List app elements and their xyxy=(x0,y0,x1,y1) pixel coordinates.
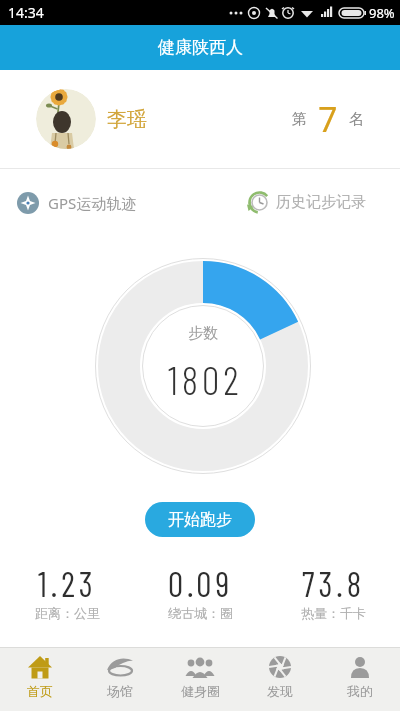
staticText: 健身圈 xyxy=(181,683,220,699)
staticText: 李瑶 xyxy=(107,107,147,132)
staticText: GPS运动轨迹 xyxy=(48,193,137,213)
staticText: 历史记步记录 xyxy=(276,193,366,212)
button[interactable]: GPS运动轨迹 xyxy=(0,169,200,236)
staticText: 1.23 xyxy=(38,563,97,604)
staticText: 发现 xyxy=(267,683,293,699)
button[interactable]: 李瑶 xyxy=(0,70,400,168)
staticText: 首页 xyxy=(27,683,53,699)
staticText: 0.09 xyxy=(168,563,234,604)
button[interactable]: 发现 xyxy=(240,648,320,711)
staticText: 距离：公里 xyxy=(35,605,100,621)
staticText: 14:34 xyxy=(8,3,44,22)
staticText: 我的 xyxy=(347,683,373,699)
staticText: 1802 xyxy=(168,356,243,403)
button[interactable]: 健身圈 xyxy=(160,648,240,711)
staticText: 健康陕西人 xyxy=(158,37,243,58)
staticText: 开始跑步 xyxy=(168,510,232,530)
staticText: 98% xyxy=(369,4,395,22)
button[interactable]: 场馆 xyxy=(80,648,160,711)
staticText: 绕古城：圈 xyxy=(168,605,233,621)
button[interactable]: 开始跑步 xyxy=(145,502,255,537)
staticText: 步数 xyxy=(188,324,218,343)
staticText: 7 xyxy=(318,96,338,142)
staticText: 热量：千卡 xyxy=(301,605,366,621)
staticText: 名 xyxy=(349,110,364,129)
button[interactable]: 我的 xyxy=(320,648,400,711)
staticText: 第 xyxy=(292,110,307,129)
button[interactable]: 历史记步记录 xyxy=(200,169,400,236)
button[interactable]: 首页 xyxy=(0,648,80,711)
staticText: 73.8 xyxy=(302,563,366,604)
staticText: 场馆 xyxy=(107,683,133,699)
